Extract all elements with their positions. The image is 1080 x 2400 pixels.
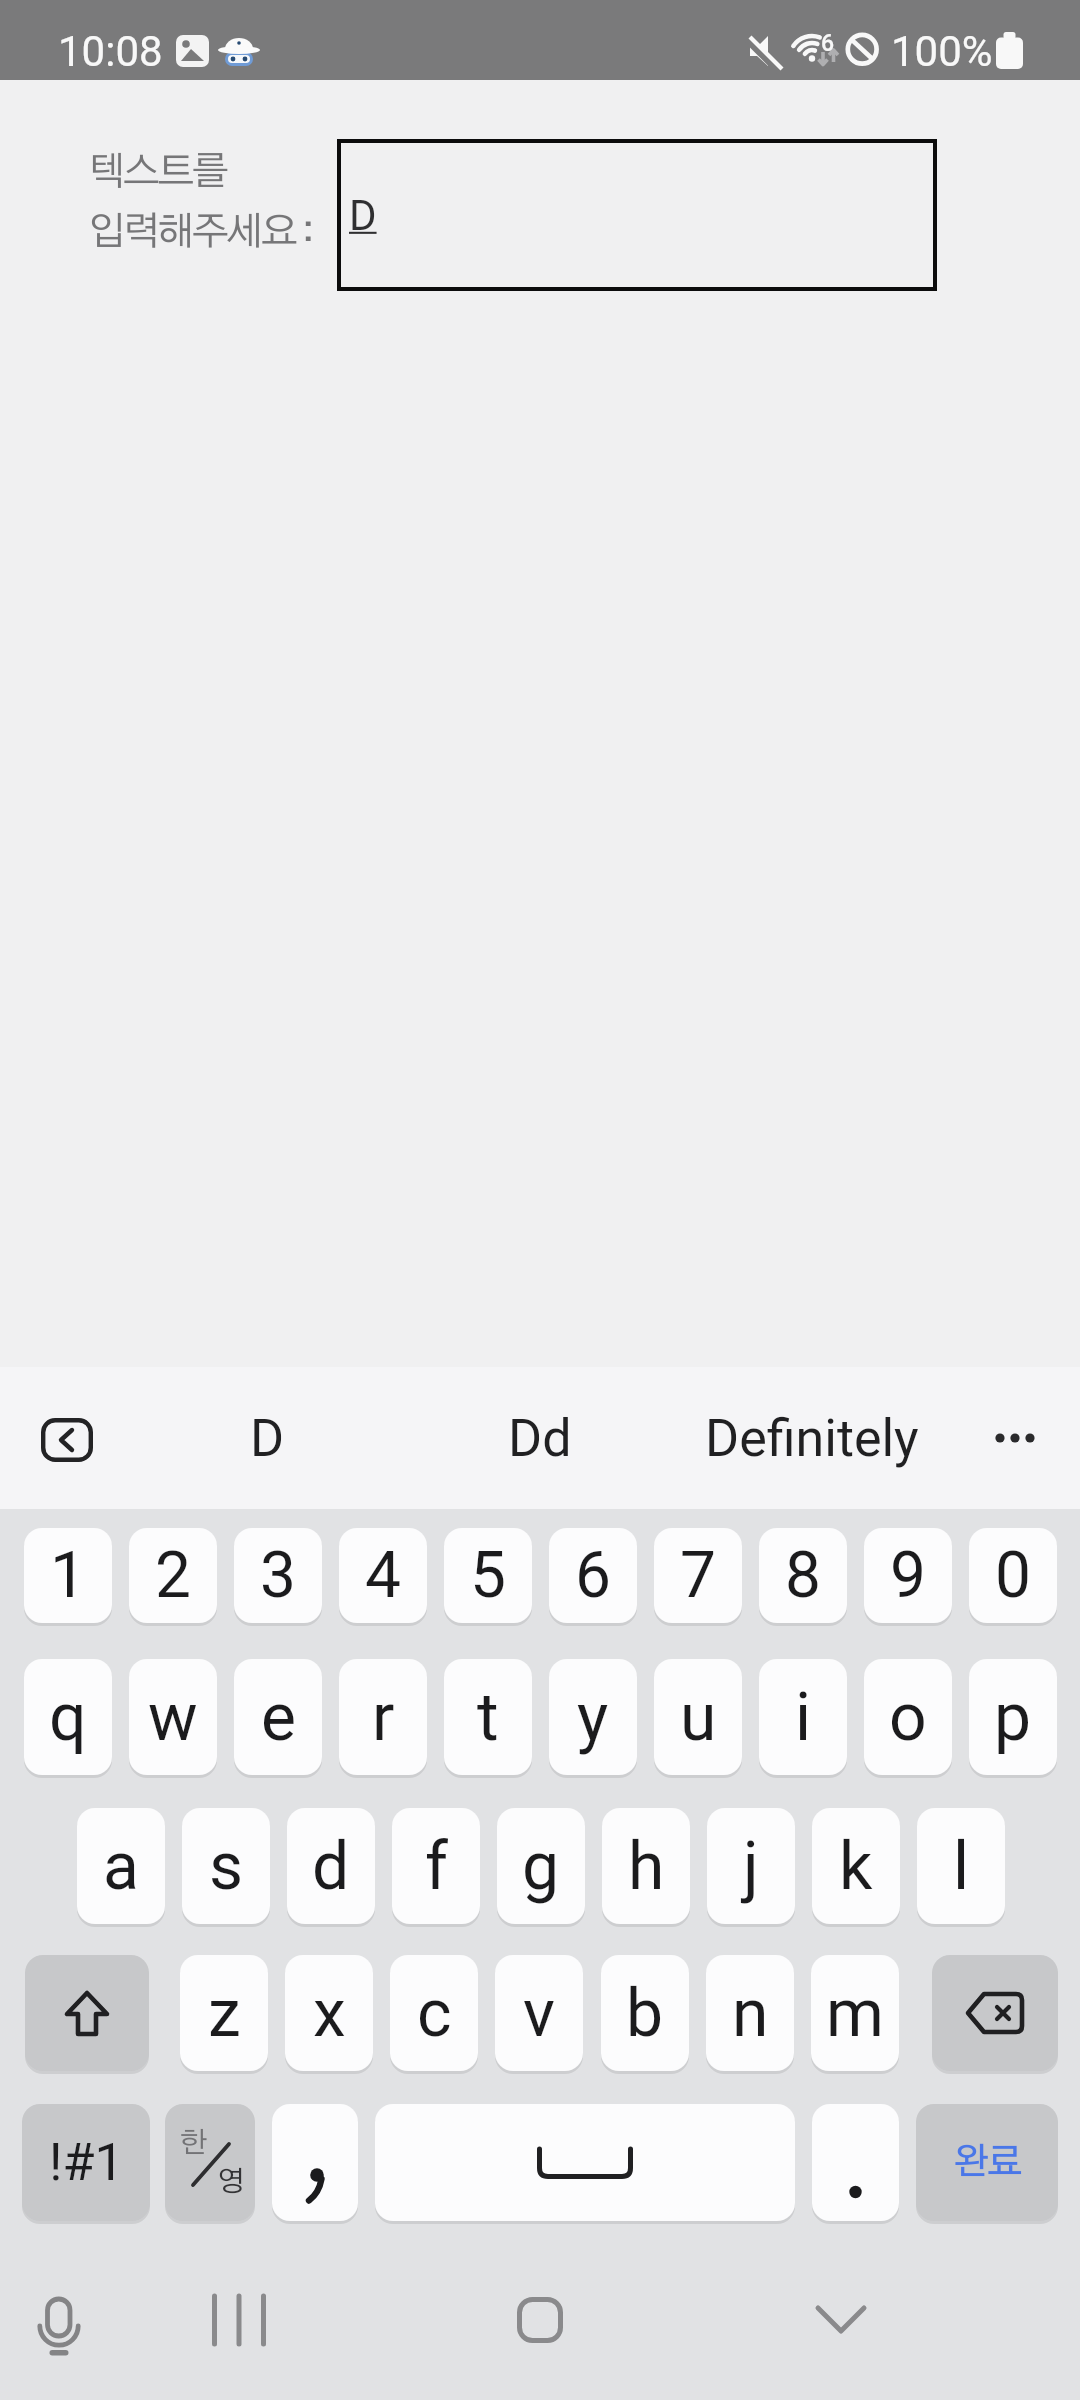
- button[interactable]: Dd: [432, 1367, 648, 1509]
- staticText: 텍스트를: [88, 153, 226, 192]
- button[interactable]: w: [129, 1659, 217, 1775]
- button[interactable]: g: [497, 1808, 585, 1924]
- button[interactable]: h: [602, 1808, 690, 1924]
- staticText: p: [994, 1679, 1032, 1756]
- staticText: 입력해주세요 :: [88, 213, 312, 252]
- staticText: a: [103, 1828, 139, 1905]
- button[interactable]: 7: [654, 1528, 742, 1623]
- staticText: 3: [260, 1538, 296, 1613]
- staticText: 9: [890, 1538, 926, 1613]
- staticText: 10:08: [58, 27, 163, 76]
- staticText: o: [889, 1679, 927, 1756]
- staticText: f: [425, 1828, 448, 1905]
- staticText: s: [209, 1828, 244, 1905]
- staticText: !#1: [49, 2132, 124, 2193]
- staticText: 완료: [953, 2144, 1021, 2181]
- button[interactable]: a: [77, 1808, 165, 1924]
- staticText: h: [628, 1828, 665, 1905]
- staticText: 6: [575, 1538, 611, 1613]
- staticText: Definitely: [705, 1408, 919, 1469]
- staticText: z: [208, 1975, 241, 2052]
- staticText: m: [826, 1975, 884, 2052]
- button[interactable]: [26, 2280, 92, 2362]
- staticText: 100%: [891, 27, 993, 76]
- button[interactable]: [25, 1955, 149, 2071]
- staticText: 4: [365, 1538, 401, 1613]
- button[interactable]: [932, 1955, 1058, 2071]
- staticText: j: [743, 1828, 759, 1905]
- staticText: b: [626, 1975, 664, 2052]
- button[interactable]: c: [390, 1955, 478, 2071]
- staticText: D: [349, 191, 377, 240]
- button[interactable]: 0: [969, 1528, 1057, 1623]
- staticText: 0: [995, 1538, 1031, 1613]
- staticText: Dd: [508, 1408, 572, 1469]
- button[interactable]: 4: [339, 1528, 427, 1623]
- button[interactable]: 한: [165, 2104, 255, 2221]
- button[interactable]: r: [339, 1659, 427, 1775]
- staticText: t: [477, 1679, 499, 1756]
- staticText: k: [839, 1828, 873, 1905]
- button[interactable]: l: [917, 1808, 1005, 1924]
- button[interactable]: [812, 2104, 899, 2221]
- button[interactable]: [975, 1403, 1055, 1473]
- button[interactable]: [495, 2275, 585, 2365]
- button[interactable]: D: [160, 1367, 375, 1509]
- button[interactable]: p: [969, 1659, 1057, 1775]
- button[interactable]: u: [654, 1659, 742, 1775]
- button[interactable]: [34, 1410, 100, 1470]
- button[interactable]: 1: [24, 1528, 112, 1623]
- button[interactable]: o: [864, 1659, 952, 1775]
- staticText: r: [372, 1679, 395, 1756]
- button[interactable]: [194, 2275, 284, 2365]
- button[interactable]: d: [287, 1808, 375, 1924]
- staticText: 1: [50, 1538, 86, 1613]
- button[interactable]: 9: [864, 1528, 952, 1623]
- button[interactable]: f: [392, 1808, 480, 1924]
- button[interactable]: q: [24, 1659, 112, 1775]
- button[interactable]: D: [337, 139, 937, 291]
- button[interactable]: 6: [549, 1528, 637, 1623]
- button[interactable]: m: [811, 1955, 899, 2071]
- button[interactable]: z: [180, 1955, 268, 2071]
- button[interactable]: e: [234, 1659, 322, 1775]
- button[interactable]: [272, 2104, 358, 2221]
- staticText: y: [577, 1679, 609, 1756]
- staticText: 6: [821, 30, 835, 57]
- button[interactable]: [796, 2275, 886, 2365]
- button[interactable]: k: [812, 1808, 900, 1924]
- button[interactable]: y: [549, 1659, 637, 1775]
- staticText: w: [148, 1679, 198, 1756]
- staticText: 7: [680, 1538, 716, 1613]
- staticText: q: [49, 1679, 87, 1756]
- staticText: n: [732, 1975, 769, 2052]
- staticText: 5: [470, 1538, 506, 1613]
- button[interactable]: 완료: [916, 2104, 1058, 2221]
- button[interactable]: [375, 2104, 795, 2221]
- button[interactable]: t: [444, 1659, 532, 1775]
- button[interactable]: 2: [129, 1528, 217, 1623]
- staticText: d: [312, 1828, 350, 1905]
- staticText: i: [795, 1679, 812, 1756]
- button[interactable]: 8: [759, 1528, 847, 1623]
- button[interactable]: 3: [234, 1528, 322, 1623]
- button[interactable]: 5: [444, 1528, 532, 1623]
- staticText: 2: [155, 1538, 191, 1613]
- staticText: c: [417, 1975, 452, 2052]
- staticText: D: [250, 1408, 285, 1469]
- button[interactable]: j: [707, 1808, 795, 1924]
- button[interactable]: v: [495, 1955, 583, 2071]
- button[interactable]: Definitely: [692, 1367, 932, 1509]
- staticText: e: [261, 1679, 296, 1756]
- button[interactable]: i: [759, 1659, 847, 1775]
- staticText: l: [953, 1828, 970, 1905]
- staticText: v: [523, 1975, 555, 2052]
- button[interactable]: b: [601, 1955, 689, 2071]
- button[interactable]: x: [285, 1955, 373, 2071]
- staticText: 영: [217, 2168, 245, 2197]
- staticText: 한: [180, 2129, 208, 2158]
- button[interactable]: !#1: [22, 2104, 150, 2221]
- staticText: u: [680, 1679, 717, 1756]
- button[interactable]: s: [182, 1808, 270, 1924]
- button[interactable]: n: [706, 1955, 794, 2071]
